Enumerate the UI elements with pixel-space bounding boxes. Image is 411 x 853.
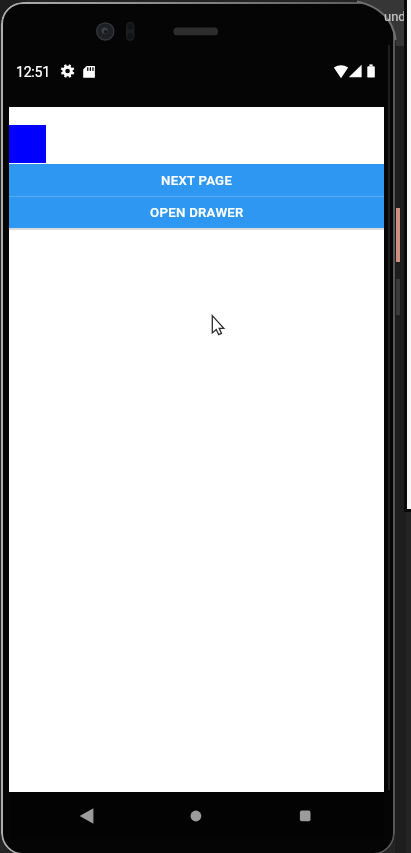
staticText: und [384,9,406,24]
staticText: NEXT PAGE [161,173,233,188]
button[interactable]: OPEN DRAWER [9,197,384,228]
button[interactable]: NEXT PAGE [9,164,384,196]
staticText: OPEN DRAWER [150,205,244,220]
staticText: 12:51 [16,64,50,81]
